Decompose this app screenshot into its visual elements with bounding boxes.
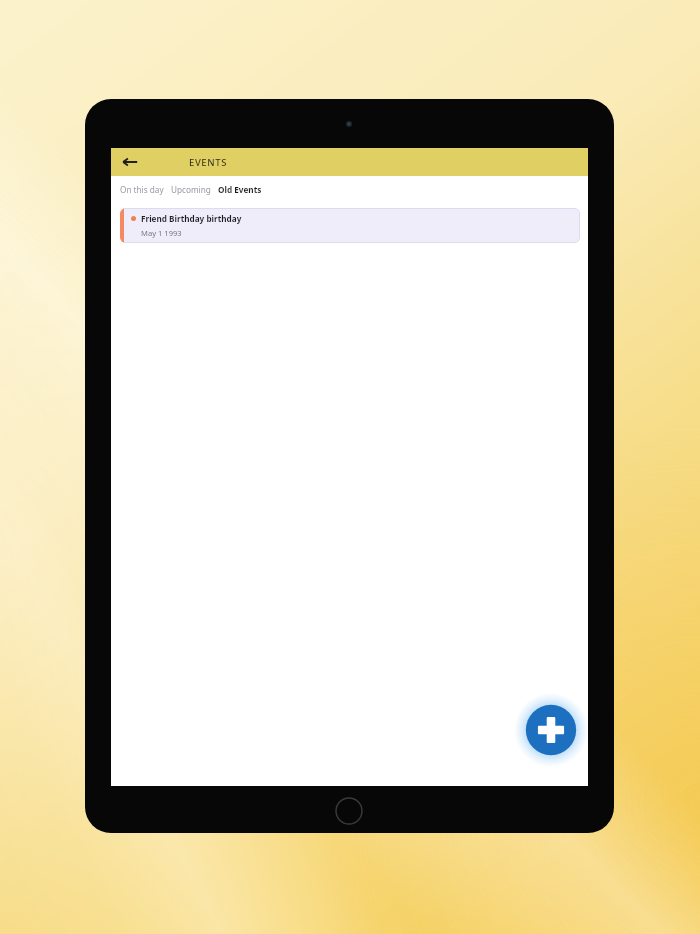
staticText: EVENTS bbox=[178, 156, 238, 169]
button[interactable]: Friend Birthday birthday bbox=[120, 208, 580, 243]
staticText: May 1 1993 bbox=[141, 228, 182, 238]
button[interactable]: Old Events bbox=[217, 181, 263, 198]
staticText: Friend Birthday birthday bbox=[141, 213, 242, 224]
button[interactable]: On this day bbox=[119, 181, 165, 198]
button[interactable]: Add event bbox=[514, 693, 588, 767]
button[interactable]: Back bbox=[119, 151, 141, 173]
staticText: Upcoming bbox=[171, 184, 211, 195]
staticText: On this day bbox=[120, 184, 164, 195]
staticText: Old Events bbox=[218, 184, 262, 195]
button[interactable]: Upcoming bbox=[170, 181, 212, 198]
